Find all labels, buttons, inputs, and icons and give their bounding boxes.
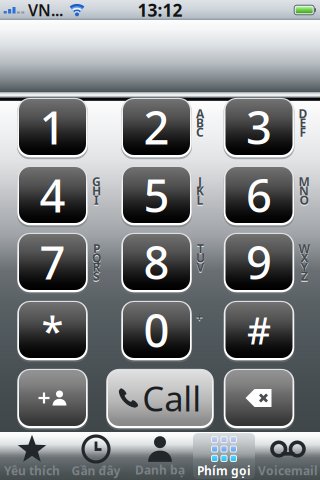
staticText: H [92, 183, 101, 199]
staticText: L [196, 193, 203, 209]
staticText: 2 [143, 97, 169, 157]
button[interactable]: Call [108, 370, 212, 426]
button[interactable]: Gần đây [64, 432, 128, 480]
button[interactable]: Danh bạ [128, 432, 192, 480]
staticText: R [92, 259, 100, 275]
staticText: X [300, 251, 308, 267]
staticText: 5 [143, 165, 169, 225]
staticText: M [298, 174, 309, 189]
button[interactable]: Add contact [19, 370, 86, 426]
staticText: * [41, 303, 63, 356]
staticText: T [197, 242, 204, 257]
staticText: A [196, 107, 204, 122]
button[interactable]: 3 [225, 99, 292, 155]
staticText: W [298, 241, 310, 256]
button[interactable]: Phím gọi [192, 432, 256, 480]
staticText: 0 [143, 300, 169, 360]
staticText: N [299, 184, 309, 200]
staticText: I [94, 193, 99, 209]
staticText: C [196, 124, 204, 140]
staticText: J [198, 174, 202, 189]
staticText: 7 [39, 232, 65, 292]
staticText: 6 [246, 165, 272, 225]
staticText: 1 [39, 97, 65, 157]
staticText: S [93, 268, 100, 284]
staticText: F [299, 125, 306, 141]
staticText: Y [300, 260, 308, 276]
button[interactable]: 1 [19, 99, 86, 155]
staticText: E [299, 116, 306, 132]
staticText: V [196, 259, 204, 275]
staticText: 4 [39, 165, 65, 225]
button[interactable]: Delete [225, 370, 292, 426]
staticText: VN... [28, 0, 63, 21]
button[interactable]: * [19, 302, 86, 358]
button[interactable]: 4 [19, 167, 86, 223]
staticText: 13:12 [137, 0, 182, 21]
staticText: N [299, 183, 309, 199]
staticText: Voicemail [258, 462, 318, 478]
staticText: Gần đây [71, 462, 120, 478]
staticText: G [92, 175, 101, 190]
staticText: + [196, 309, 203, 324]
staticText: E [299, 115, 306, 131]
staticText: + [196, 310, 203, 325]
staticText: I [94, 192, 99, 208]
staticText: U [196, 251, 205, 267]
staticText: B [196, 116, 204, 132]
staticText: H [92, 184, 101, 200]
button[interactable]: Yêu thích [0, 432, 64, 480]
staticText: J [198, 175, 202, 190]
button[interactable]: Voicemail [256, 432, 320, 480]
staticText: T [197, 241, 204, 256]
button[interactable]: 5 [123, 167, 190, 223]
button[interactable]: 7 [19, 234, 86, 290]
staticText: Danh bạ [135, 462, 185, 478]
staticText: Phím gọi [197, 462, 251, 478]
button[interactable]: 2 [123, 99, 190, 155]
staticText: P [93, 242, 100, 257]
staticText: U [196, 250, 205, 266]
staticText: K [196, 183, 204, 199]
button[interactable]: 8 [123, 234, 190, 290]
staticText: W [298, 242, 310, 257]
button[interactable]: # [225, 302, 292, 358]
staticText: Yêu thích [4, 462, 60, 478]
button[interactable]: 9 [225, 234, 292, 290]
staticText: Q [92, 250, 101, 266]
staticText: F [299, 124, 306, 140]
staticText: L [196, 192, 203, 208]
staticText: D [298, 106, 307, 121]
staticText: Y [300, 259, 308, 275]
staticText: R [92, 260, 100, 276]
button[interactable]: 0 [123, 302, 190, 358]
staticText: M [298, 175, 309, 190]
staticText: C [196, 125, 204, 141]
staticText: O [299, 192, 308, 208]
staticText: Z [301, 268, 308, 284]
staticText: A [196, 106, 204, 121]
staticText: V [196, 260, 204, 276]
staticText: D [298, 107, 307, 122]
staticText: # [247, 305, 271, 355]
staticText: 3 [246, 97, 272, 157]
staticText: P [93, 241, 100, 256]
staticText: B [196, 115, 204, 131]
staticText: O [299, 193, 308, 209]
staticText: S [93, 269, 100, 285]
staticText: Q [92, 251, 101, 267]
staticText: Call [142, 375, 201, 421]
staticText: G [92, 174, 101, 189]
staticText: Z [301, 269, 308, 285]
button[interactable]: 6 [225, 167, 292, 223]
staticText: K [196, 184, 204, 200]
staticText: 9 [246, 232, 272, 292]
staticText: X [300, 250, 308, 266]
staticText: 8 [143, 232, 169, 292]
